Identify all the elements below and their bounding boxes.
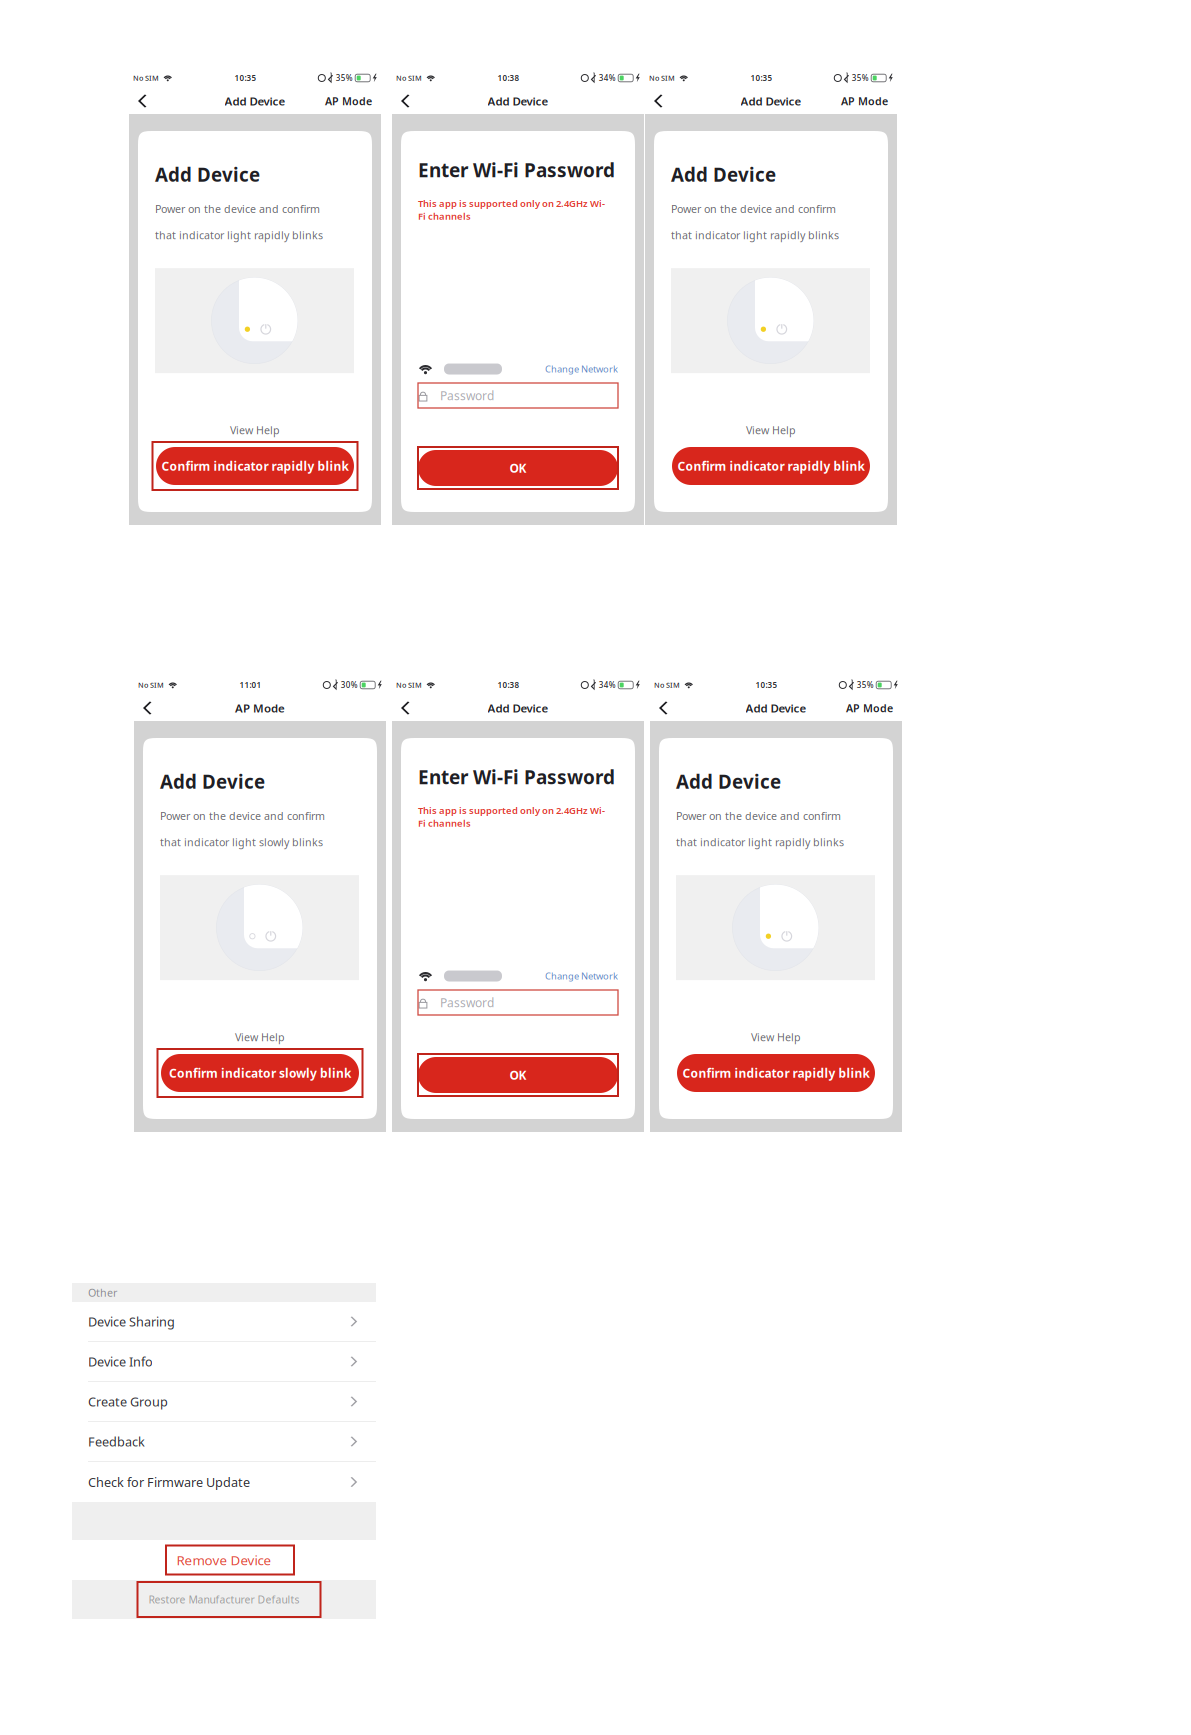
button[interactable]: View Help [138, 422, 372, 438]
staticText: Fi channels [418, 817, 471, 830]
button[interactable]: Confirm indicator rapidly blink [156, 447, 354, 485]
staticText: View Help [751, 1030, 801, 1044]
staticText: Fi channels [418, 210, 471, 223]
button[interactable]: View Help [659, 1029, 893, 1045]
button[interactable]: OK [418, 1057, 618, 1093]
staticText: Add Device [740, 93, 801, 109]
staticText: Add Device [676, 769, 781, 794]
staticText: View Help [235, 1030, 285, 1044]
staticText: Create Group [88, 1393, 168, 1410]
staticText: Other [88, 1285, 117, 1300]
button[interactable]: Back [138, 91, 160, 111]
button[interactable]: Change Network [545, 363, 618, 375]
staticText: Add Device [160, 769, 265, 794]
button[interactable]: AP Mode [325, 90, 372, 112]
staticText: Add Device [487, 700, 548, 716]
staticText: Password [440, 387, 494, 403]
button[interactable]: Confirm indicator rapidly blink [672, 447, 870, 485]
staticText: Power on the device and confirm [671, 202, 836, 216]
staticText: View Help [230, 423, 280, 437]
button[interactable]: Feedback [72, 1422, 376, 1462]
staticText: that indicator light rapidly blinks [155, 228, 323, 242]
staticText: Restore Manufacturer Defaults [148, 1592, 299, 1607]
button[interactable]: Remove Device [72, 1540, 376, 1580]
staticText: AP Mode [325, 94, 372, 108]
staticText: Remove Device [176, 1551, 271, 1569]
staticText: No SIM [654, 680, 680, 690]
staticText: No SIM [138, 680, 164, 690]
staticText: 10:38 [497, 680, 519, 690]
staticText: AP Mode [235, 700, 285, 716]
staticText: Add Device [745, 700, 806, 716]
staticText: No SIM [133, 73, 159, 83]
staticText: Add Device [487, 93, 548, 109]
staticText: 35% [336, 73, 353, 83]
staticText: OK [509, 1067, 526, 1083]
staticText: Check for Firmware Update [88, 1473, 250, 1491]
button[interactable]: OK [418, 450, 618, 486]
button[interactable]: Back [143, 698, 165, 718]
staticText: 35% [852, 73, 869, 83]
button[interactable]: Check for Firmware Update [72, 1462, 376, 1502]
staticText: No SIM [396, 680, 422, 690]
button[interactable]: Change Network [545, 970, 618, 982]
staticText: 30% [341, 680, 358, 690]
staticText: Device Sharing [88, 1313, 175, 1330]
staticText: 11:01 [239, 680, 261, 690]
staticText: that indicator light slowly blinks [160, 835, 323, 849]
staticText: Power on the device and confirm [160, 809, 325, 823]
button[interactable]: Confirm indicator rapidly blink [677, 1054, 875, 1092]
staticText: that indicator light rapidly blinks [676, 835, 844, 849]
staticText: OK [509, 460, 526, 476]
staticText: This app is supported only on 2.4GHz Wi- [418, 197, 605, 210]
staticText: AP Mode [846, 701, 893, 715]
staticText: 35% [857, 680, 874, 690]
staticText: No SIM [649, 73, 675, 83]
staticText: 10:35 [234, 73, 256, 83]
button[interactable]: Back [401, 91, 423, 111]
staticText: Password [440, 994, 494, 1010]
button[interactable]: View Help [654, 422, 888, 438]
staticText: Add Device [671, 162, 776, 187]
staticText: Feedback [88, 1433, 145, 1450]
staticText: Confirm indicator slowly blink [169, 1065, 351, 1081]
button[interactable]: AP Mode [841, 90, 888, 112]
staticText: Enter Wi-Fi Password [418, 764, 615, 790]
staticText: Add Device [224, 93, 285, 109]
staticText: Confirm indicator rapidly blink [161, 458, 348, 474]
staticText: Power on the device and confirm [676, 809, 841, 823]
staticText: Confirm indicator rapidly blink [682, 1065, 869, 1081]
staticText: Change Network [545, 970, 618, 982]
staticText: No SIM [396, 73, 422, 83]
button[interactable]: Confirm indicator slowly blink [161, 1054, 359, 1092]
staticText: 10:35 [750, 73, 772, 83]
button[interactable]: Back [654, 91, 676, 111]
button[interactable]: Back [401, 698, 423, 718]
staticText: 34% [599, 73, 616, 83]
button[interactable]: Restore Manufacturer Defaults [72, 1580, 376, 1619]
staticText: Power on the device and confirm [155, 202, 320, 216]
staticText: This app is supported only on 2.4GHz Wi- [418, 804, 605, 817]
staticText: Add Device [155, 162, 260, 187]
staticText: Device Info [88, 1353, 153, 1370]
staticText: 34% [599, 680, 616, 690]
staticText: AP Mode [841, 94, 888, 108]
staticText: that indicator light rapidly blinks [671, 228, 839, 242]
staticText: Confirm indicator rapidly blink [677, 458, 864, 474]
button[interactable]: Back [659, 698, 681, 718]
staticText: Enter Wi-Fi Password [418, 157, 615, 183]
button[interactable]: Device Sharing [72, 1302, 376, 1342]
button[interactable]: Device Info [72, 1342, 376, 1382]
button[interactable]: View Help [143, 1029, 377, 1045]
staticText: View Help [746, 423, 796, 437]
staticText: Change Network [545, 363, 618, 375]
button[interactable]: AP Mode [846, 697, 893, 719]
staticText: 10:35 [755, 680, 777, 690]
staticText: 10:38 [497, 73, 519, 83]
button[interactable]: Create Group [72, 1382, 376, 1422]
